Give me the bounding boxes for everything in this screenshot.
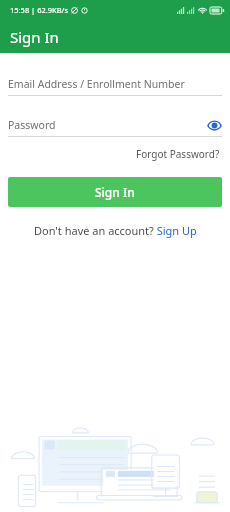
staticText: Forgot Password? bbox=[136, 147, 220, 161]
button[interactable]: Show password bbox=[206, 117, 222, 133]
button[interactable]: Forgot Password? bbox=[134, 145, 222, 163]
button[interactable]: Password bbox=[8, 116, 222, 137]
staticText: Sign In bbox=[95, 184, 135, 200]
button[interactable]: Sign In bbox=[8, 177, 222, 207]
staticText: 15:58 | 62.9KB/s bbox=[10, 5, 68, 15]
button[interactable]: Email Address / Enrollment Number bbox=[8, 75, 222, 96]
staticText: Don't have an account? Sign Up bbox=[34, 223, 197, 238]
button[interactable]: Don't have an account? Sign Up bbox=[30, 219, 201, 242]
staticText: Sign In bbox=[10, 27, 59, 47]
staticText: Email Address / Enrollment Number bbox=[8, 77, 185, 91]
staticText: Password bbox=[8, 118, 56, 132]
